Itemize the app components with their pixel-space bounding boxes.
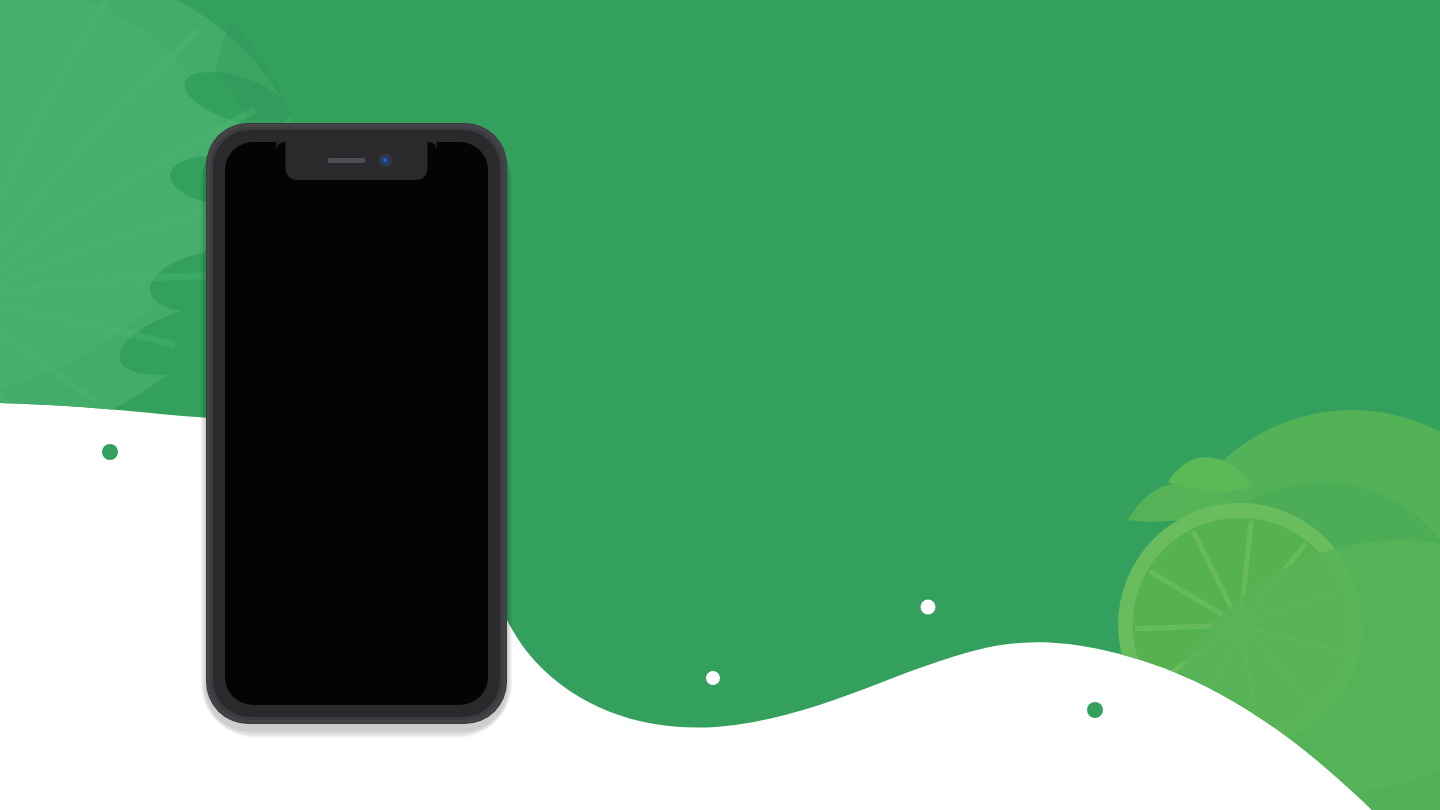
button[interactable]: App preview on phone: [0, 0, 1440, 810]
other: App preview on phone: [0, 0, 1440, 810]
